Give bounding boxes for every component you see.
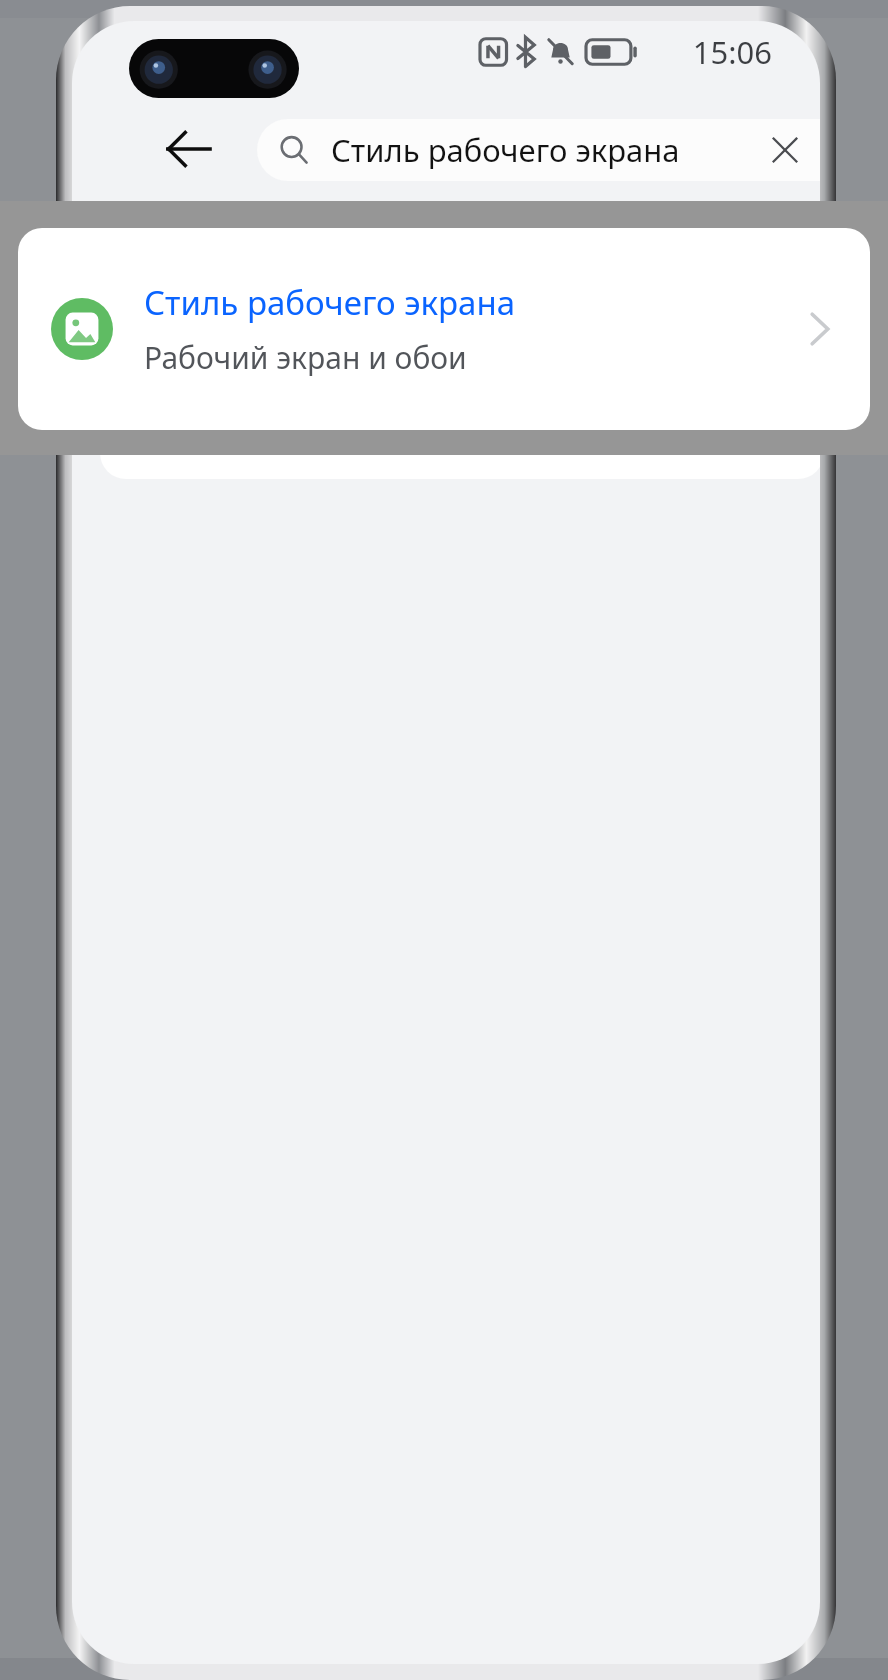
staticText: Рабочий экран и обои bbox=[144, 337, 467, 378]
staticText: Стиль рабочего экрана bbox=[144, 280, 516, 325]
button[interactable]: Очистить bbox=[754, 119, 816, 181]
button[interactable]: Назад bbox=[150, 113, 226, 185]
staticText: 15:06 bbox=[692, 31, 772, 73]
staticText: Стиль рабочего экрана bbox=[331, 129, 680, 171]
button[interactable] bbox=[100, 217, 820, 479]
button[interactable]: Стиль рабочего экрана bbox=[18, 228, 870, 430]
button[interactable]: Стиль рабочего экрана bbox=[257, 119, 820, 181]
